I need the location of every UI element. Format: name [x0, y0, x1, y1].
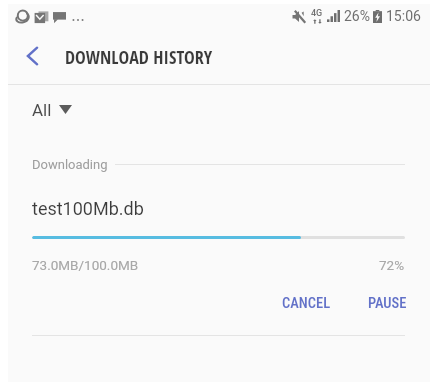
staticText: test100Mb.db [32, 198, 144, 219]
staticText: 15:06 [386, 8, 421, 24]
staticText: CANCEL [282, 295, 331, 312]
button[interactable]: Navigate up [8, 28, 56, 84]
staticText: 72% [379, 257, 405, 273]
button[interactable]: All [8, 85, 430, 138]
staticText: 4G [311, 8, 323, 19]
button[interactable]: CANCEL [276, 288, 337, 319]
staticText: PAUSE [368, 295, 407, 312]
staticText: All [32, 100, 52, 120]
staticText: Downloading [32, 157, 108, 172]
staticText: DOWNLOAD HISTORY [65, 45, 213, 70]
staticText: 73.0MB/100.0MB [32, 257, 139, 273]
button[interactable]: PAUSE [362, 288, 407, 319]
staticText: 26% [344, 8, 370, 24]
